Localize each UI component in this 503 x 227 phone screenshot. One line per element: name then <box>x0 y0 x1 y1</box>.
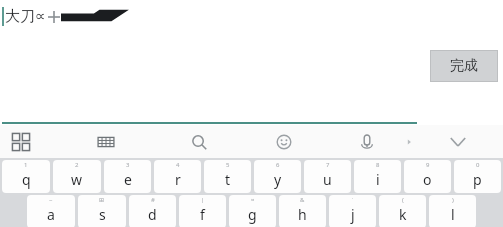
button[interactable]: 完成 <box>430 50 498 82</box>
button[interactable]: & <box>279 195 326 227</box>
staticText: o <box>423 170 432 189</box>
button[interactable]: Apps <box>10 125 32 158</box>
staticText: ⊞ <box>99 196 105 203</box>
button[interactable]: ˙ <box>329 195 376 227</box>
button[interactable]: Voice input <box>356 125 378 158</box>
staticText: 完成 <box>450 57 478 75</box>
button[interactable]: Search <box>188 125 210 158</box>
staticText: h <box>298 205 307 224</box>
staticText: 7 <box>326 161 330 169</box>
staticText: 2 <box>75 161 79 169</box>
staticText: r <box>175 170 181 189</box>
button[interactable]: ( <box>379 195 426 227</box>
button[interactable]: Hide keyboard <box>447 125 469 158</box>
staticText: f <box>200 205 205 224</box>
button[interactable]: Emoji <box>273 125 295 158</box>
staticText: s <box>99 205 106 224</box>
staticText: 3 <box>126 161 130 169</box>
staticText: g <box>248 205 257 224</box>
button[interactable]: 0 <box>454 160 501 193</box>
staticText: ˙ <box>352 196 354 204</box>
staticText: j <box>351 205 355 224</box>
staticText: ( <box>402 196 404 204</box>
staticText: p <box>473 170 482 189</box>
staticText: 8 <box>376 161 380 169</box>
button[interactable]: 7 <box>304 160 351 193</box>
staticText: i <box>376 170 380 189</box>
staticText: | <box>201 196 205 204</box>
staticText: d <box>148 205 157 224</box>
button[interactable]: 6 <box>254 160 301 193</box>
staticText: & <box>300 196 305 204</box>
staticText: 1 <box>24 161 28 169</box>
button[interactable]: More <box>401 125 417 158</box>
button[interactable]: 2 <box>53 160 101 193</box>
button[interactable]: 8 <box>354 160 401 193</box>
button[interactable]: ⊞ <box>78 195 126 227</box>
button[interactable]: 4 <box>154 160 201 193</box>
staticText: e <box>124 170 132 189</box>
button[interactable]: | <box>179 195 226 227</box>
staticText: # <box>151 196 155 204</box>
staticText: 大刀∝ <box>5 7 46 26</box>
button[interactable]: ¤ <box>229 195 276 227</box>
staticText: ) <box>452 196 454 204</box>
staticText: k <box>399 205 407 224</box>
button[interactable]: 9 <box>404 160 451 193</box>
staticText: a <box>47 205 55 224</box>
staticText: 9 <box>426 161 430 169</box>
staticText: 0 <box>476 161 480 169</box>
staticText: t <box>225 170 231 189</box>
button[interactable]: # <box>129 195 176 227</box>
staticText: y <box>274 170 282 189</box>
button[interactable]: 5 <box>204 160 251 193</box>
staticText: ¤ <box>251 196 255 204</box>
button[interactable]: 1 <box>2 160 50 193</box>
button[interactable]: Keyboard layout <box>95 125 117 158</box>
staticText: 5 <box>226 161 230 169</box>
staticText: 4 <box>176 161 180 169</box>
staticText: ~ <box>49 196 53 204</box>
staticText: q <box>22 170 31 189</box>
staticText: w <box>71 170 83 189</box>
button[interactable]: ) <box>429 195 476 227</box>
staticText: 6 <box>276 161 280 169</box>
staticText: u <box>323 170 332 189</box>
staticText: l <box>451 205 455 224</box>
button[interactable]: 3 <box>104 160 151 193</box>
button[interactable]: ~ <box>27 195 75 227</box>
